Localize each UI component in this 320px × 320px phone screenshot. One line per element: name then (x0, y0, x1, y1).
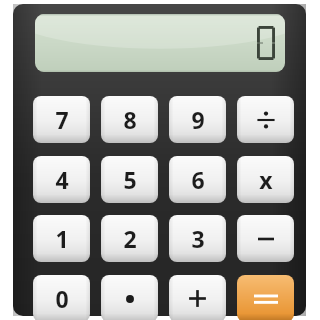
button[interactable]: Add (169, 275, 226, 320)
button[interactable]: 0 (33, 275, 90, 320)
button[interactable]: 1 (33, 215, 90, 262)
button[interactable]: Subtract (237, 215, 294, 262)
staticText: 2 (123, 223, 137, 254)
button[interactable]: 5 (101, 156, 158, 203)
staticText: 5 (123, 164, 137, 195)
staticText: 8 (123, 104, 137, 135)
staticText: 1 (55, 223, 69, 254)
button[interactable]: 6 (169, 156, 226, 203)
button[interactable]: 4 (33, 156, 90, 203)
button[interactable]: Equals (237, 275, 294, 320)
button[interactable]: Decimal point (101, 275, 158, 320)
staticText: 3 (191, 223, 205, 254)
staticText: 7 (55, 104, 69, 135)
button[interactable]: Multiply (237, 156, 294, 203)
staticText: 4 (55, 164, 69, 195)
button[interactable]: 7 (33, 96, 90, 143)
staticText: 0 (55, 283, 69, 314)
button[interactable]: 3 (169, 215, 226, 262)
button[interactable]: 9 (169, 96, 226, 143)
button[interactable]: 8 (101, 96, 158, 143)
staticText: 9 (191, 104, 205, 135)
button[interactable]: Divide (237, 96, 294, 143)
button[interactable]: 2 (101, 215, 158, 262)
staticText: 6 (191, 164, 205, 195)
staticText: x (259, 164, 273, 195)
